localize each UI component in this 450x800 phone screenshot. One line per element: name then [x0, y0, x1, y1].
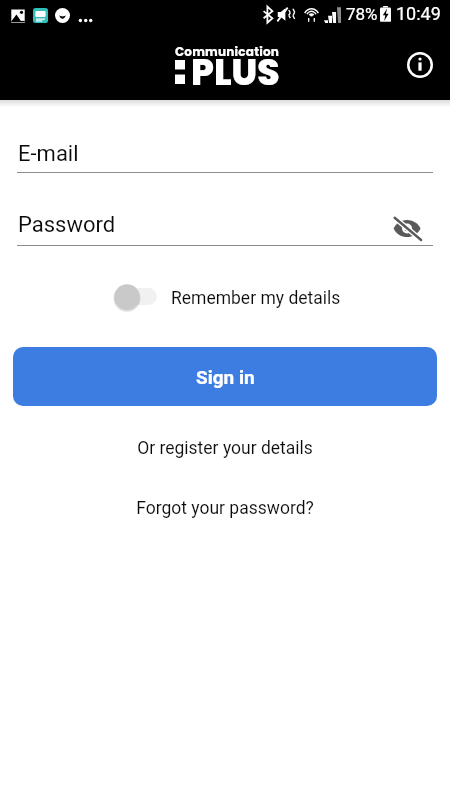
button[interactable]: Forgot your password?	[126, 495, 324, 522]
staticText: 78%	[346, 4, 378, 24]
staticText: E-mail	[18, 141, 79, 167]
button[interactable]: Sign in	[13, 347, 437, 406]
staticText: Forgot your password?	[136, 498, 314, 519]
staticText: PLUS	[191, 47, 280, 97]
staticText: Password	[18, 212, 116, 238]
staticText: Remember my details	[171, 288, 341, 309]
button[interactable]: Or register your details	[127, 435, 323, 462]
button[interactable]: Information	[403, 48, 437, 82]
button[interactable]: Show password	[391, 212, 423, 244]
staticText: Or register your details	[137, 438, 313, 459]
button[interactable]: Remember my details	[114, 285, 341, 311]
staticText: Communication	[175, 43, 280, 60]
staticText: Sign in	[196, 366, 255, 388]
staticText: 10:49	[396, 3, 441, 24]
